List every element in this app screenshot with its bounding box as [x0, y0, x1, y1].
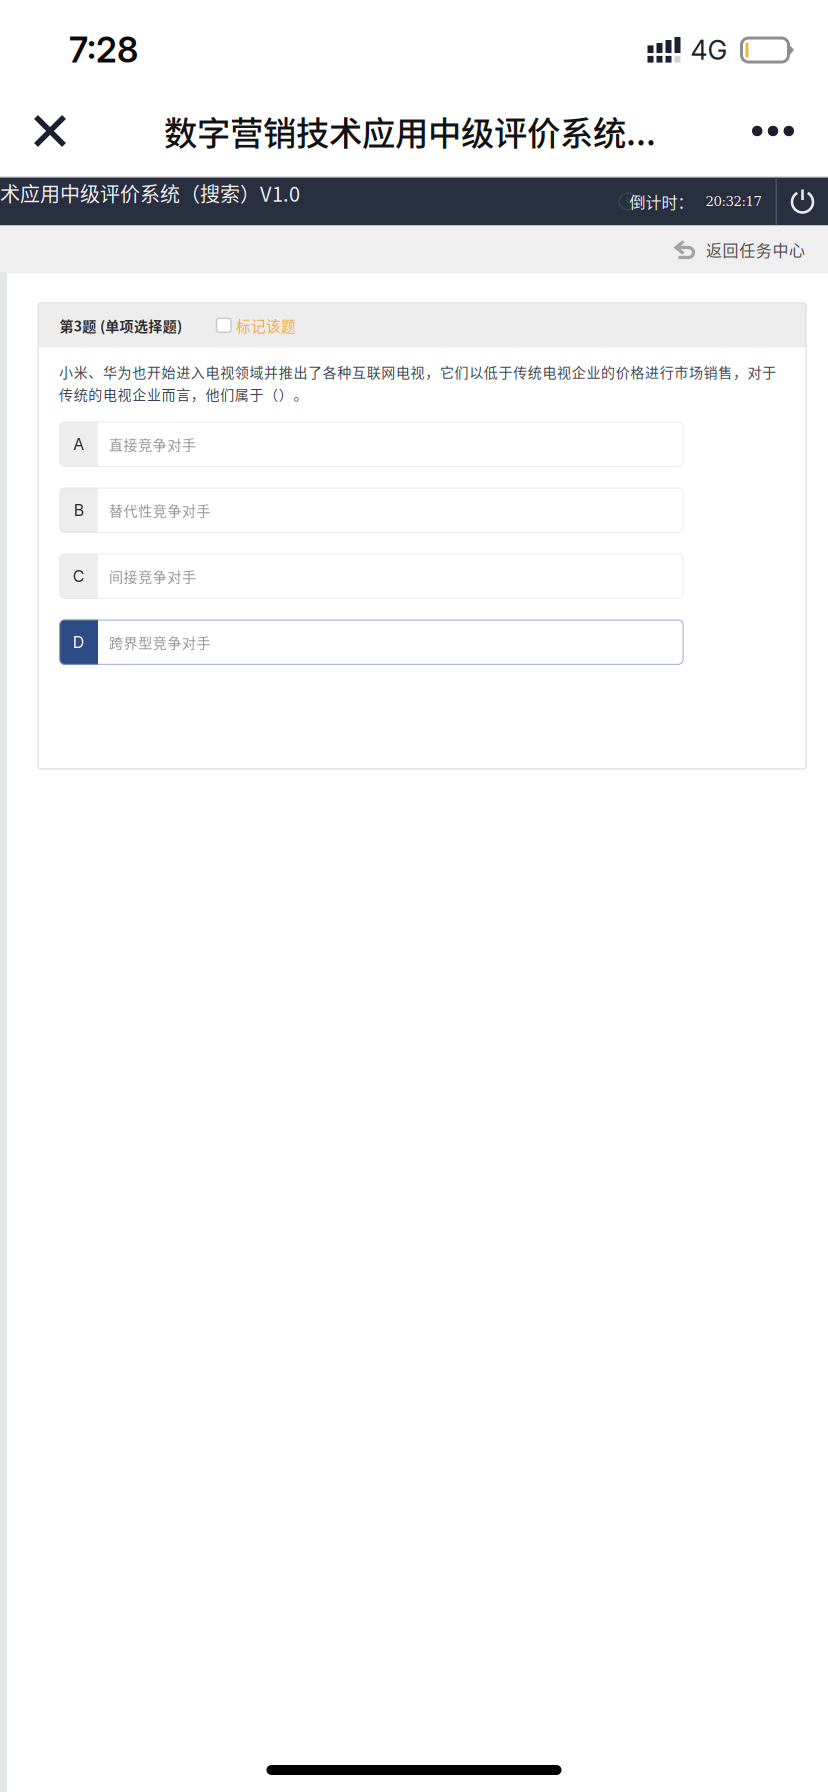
staticText: C: [73, 566, 85, 586]
staticText: 标记该题: [236, 315, 296, 336]
staticText: 第3题 (单项选择题): [59, 315, 182, 335]
button[interactable]: 标记该题: [216, 303, 300, 347]
staticText: 数字营销技术应用中级评价系统...: [164, 107, 656, 155]
staticText: 20:32:17: [705, 194, 761, 209]
staticText: 间接竞争对手: [109, 566, 196, 586]
button[interactable]: A: [59, 422, 683, 467]
staticText: A: [73, 434, 84, 454]
staticText: 7:28: [69, 29, 138, 71]
button[interactable]: 返回任务中心: [674, 225, 828, 273]
staticText: 跨界型竞争对手: [109, 632, 211, 652]
staticText: 返回任务中心: [706, 238, 805, 261]
staticText: D: [73, 632, 85, 652]
button[interactable]: C: [59, 554, 683, 599]
button[interactable]: D: [59, 620, 683, 665]
button[interactable]: Close: [16, 93, 84, 169]
button[interactable]: B: [59, 488, 683, 533]
staticText: 小米、华为也开始进入电视领域并推出了各种互联网电视，它们以低于传统电视企业的价格…: [59, 362, 791, 404]
staticText: 直接竞争对手: [109, 434, 196, 454]
staticText: 术应用中级评价系统（搜索）V1.0: [0, 178, 300, 207]
button[interactable]: Exit exam: [777, 177, 828, 225]
staticText: 替代性竞争对手: [109, 500, 211, 520]
staticText: 倒计时：: [629, 190, 693, 213]
staticText: B: [74, 500, 84, 520]
button[interactable]: More options: [735, 93, 811, 169]
staticText: 4G: [690, 34, 727, 66]
